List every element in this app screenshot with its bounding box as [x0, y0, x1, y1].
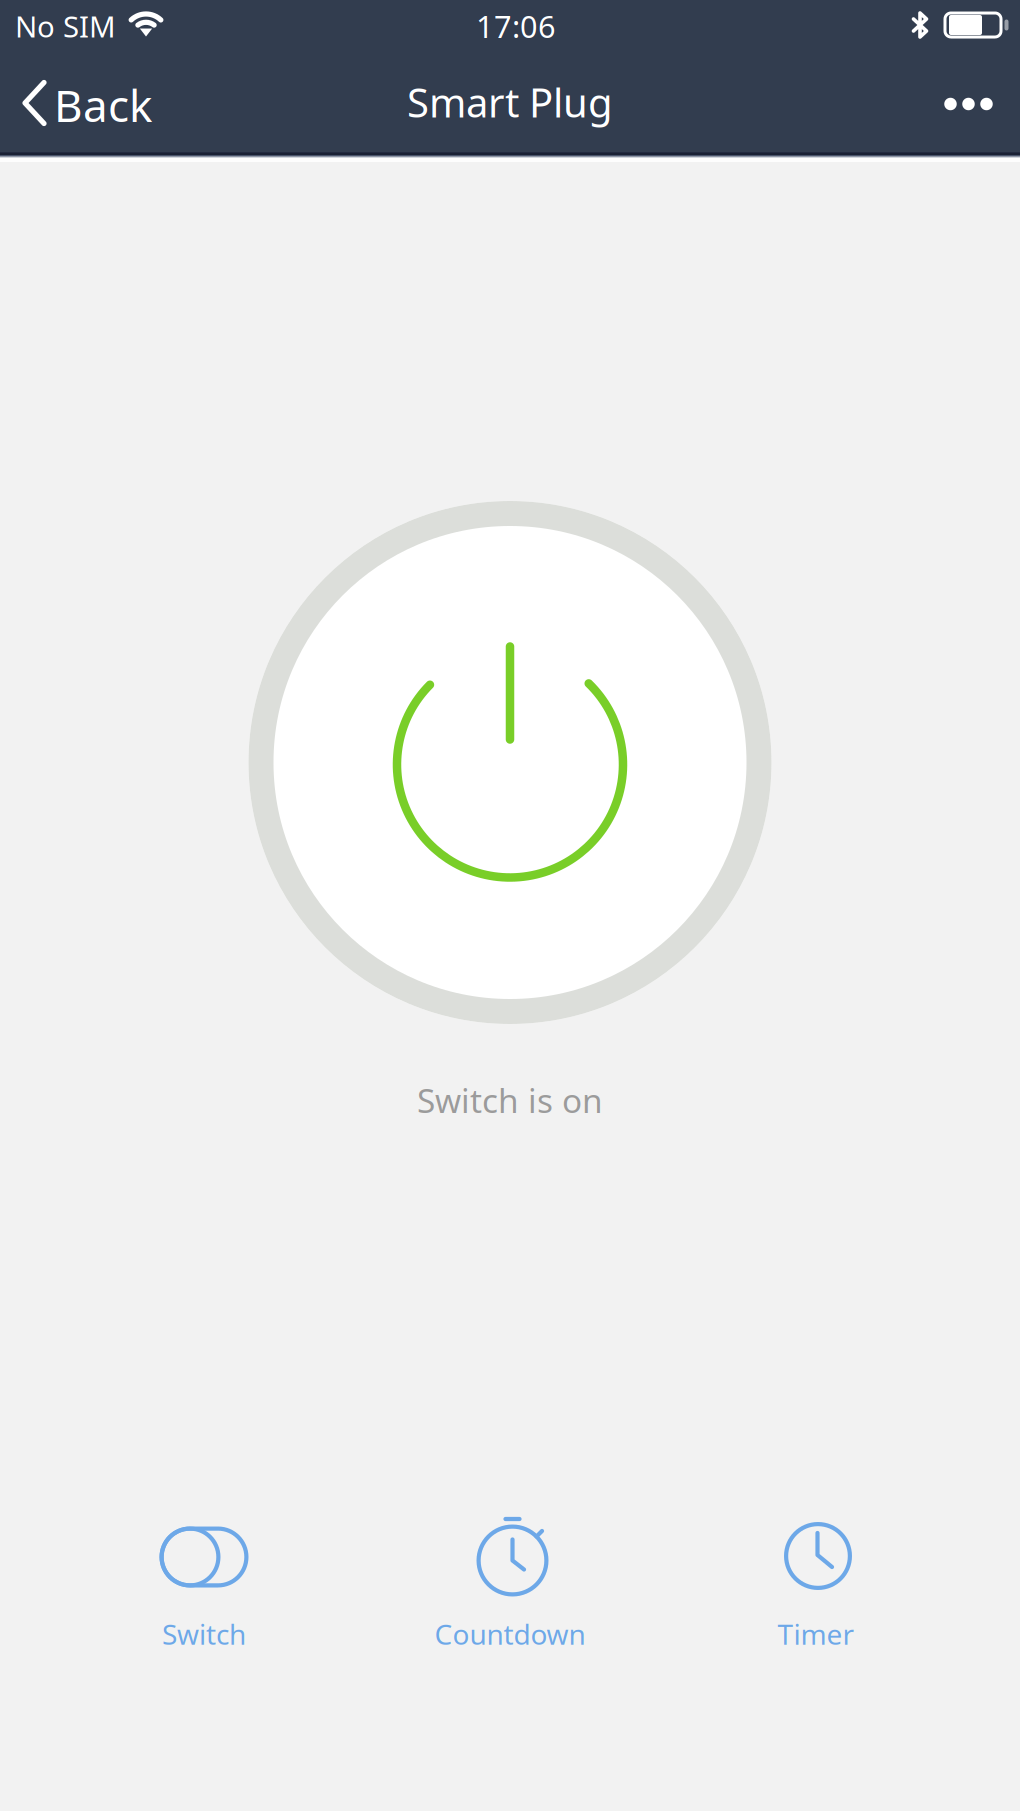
staticText: Timer — [777, 1615, 854, 1653]
button[interactable]: Timer — [663, 1456, 969, 1656]
staticText: Countdown — [434, 1615, 585, 1653]
staticText: 17:06 — [476, 6, 556, 46]
staticText: Back — [54, 76, 152, 134]
staticText: Switch is on — [417, 1078, 603, 1122]
staticText: Smart Plug — [407, 75, 613, 128]
button[interactable]: Power, switch is on — [248, 501, 771, 1024]
staticText: No SIM — [15, 6, 116, 45]
staticText: Switch — [162, 1615, 246, 1653]
button[interactable]: Back — [0, 53, 180, 152]
button[interactable]: Switch — [51, 1456, 357, 1656]
button[interactable]: More options — [898, 54, 1020, 153]
button[interactable]: Countdown — [357, 1456, 663, 1656]
